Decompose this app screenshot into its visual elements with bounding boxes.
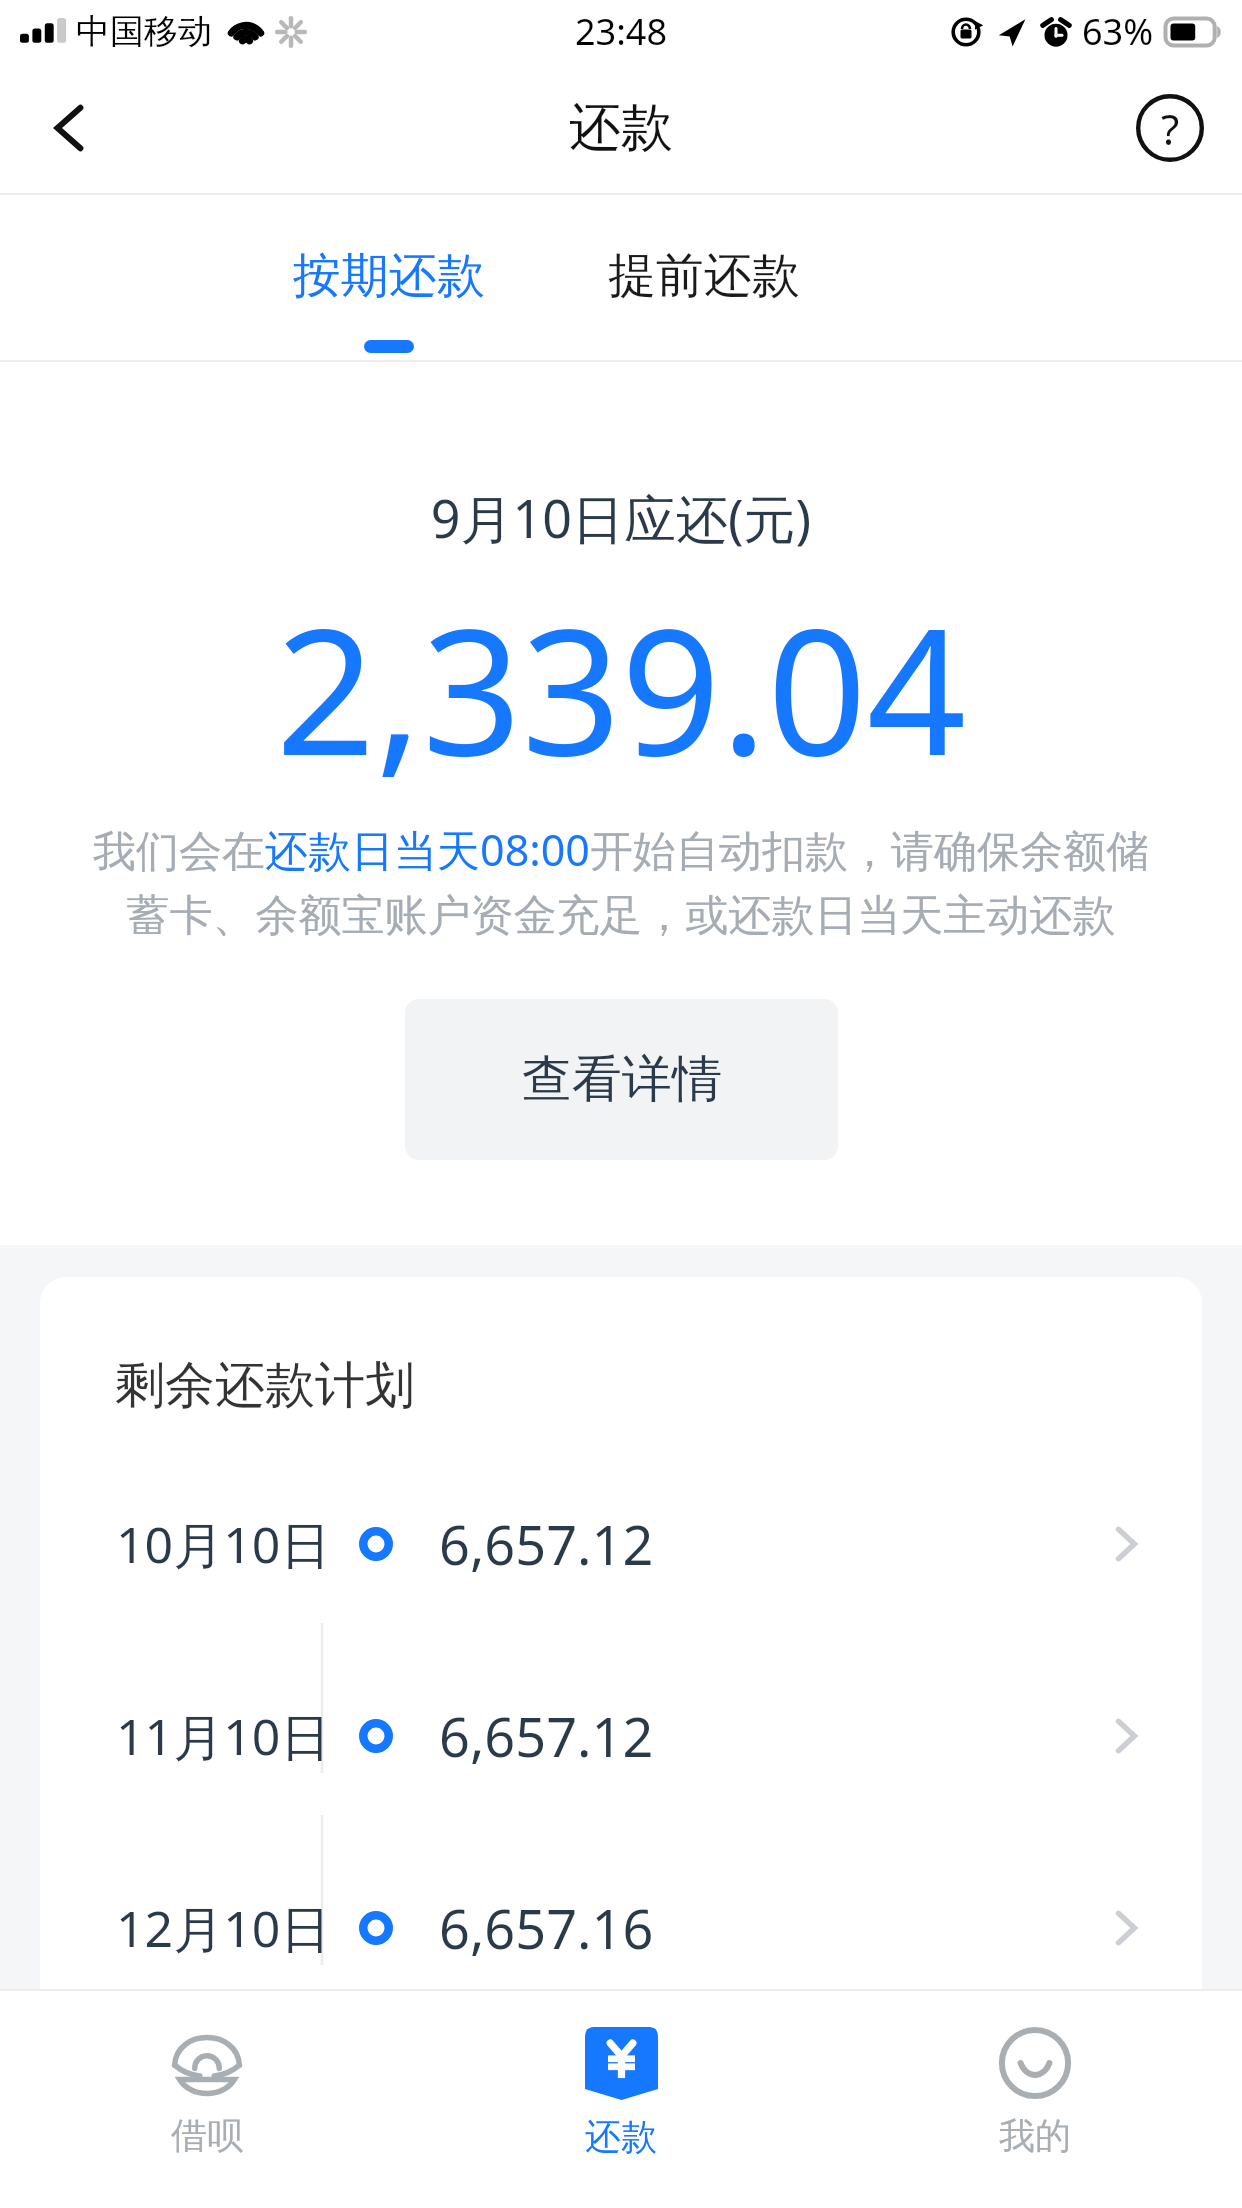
button[interactable]: 12月10日 bbox=[40, 1891, 1202, 2037]
staticText: 查看详情 bbox=[522, 1048, 722, 1111]
staticText: 6,657.12 bbox=[439, 1699, 654, 1773]
staticText: 还款 bbox=[585, 2114, 657, 2159]
staticText: ? bbox=[1161, 100, 1180, 157]
staticText: 12月10日 bbox=[116, 1894, 331, 1962]
staticText: 我们会在还款日当天08:00开始自动扣款，请确保余额储蓄卡、余额宝账户资金充足，… bbox=[82, 820, 1160, 943]
button[interactable]: 按期还款 bbox=[231, 195, 546, 360]
button[interactable]: 11月10日 bbox=[40, 1699, 1202, 1891]
staticText: 提前还款 bbox=[608, 246, 800, 306]
staticText: 23:48 bbox=[575, 7, 668, 56]
staticText: 借呗 bbox=[171, 2113, 243, 2158]
staticText: 2,339.04 bbox=[0, 569, 1242, 806]
staticText: 9月10日应还(元) bbox=[0, 482, 1242, 553]
staticText: 11月10日 bbox=[116, 1702, 331, 1770]
button[interactable]: 我的 bbox=[828, 1991, 1242, 2158]
button[interactable]: Help bbox=[1128, 86, 1212, 170]
button[interactable]: 10月10日 bbox=[40, 1507, 1202, 1699]
staticText: 我的 bbox=[999, 2113, 1071, 2158]
button[interactable]: 查看详情 bbox=[405, 999, 838, 1160]
button[interactable]: 提前还款 bbox=[546, 195, 861, 360]
button[interactable]: Back bbox=[28, 86, 112, 170]
staticText: 按期还款 bbox=[293, 246, 485, 306]
button[interactable]: 借呗 bbox=[0, 1991, 414, 2158]
staticText: 6,657.16 bbox=[439, 1891, 654, 1965]
staticText: 63% bbox=[1082, 7, 1154, 56]
staticText: 10月10日 bbox=[116, 1510, 331, 1578]
staticText: 剩余还款计划 bbox=[115, 1354, 415, 1417]
staticText: 中国移动 bbox=[76, 10, 212, 53]
button[interactable]: 还款 bbox=[414, 1991, 828, 2159]
staticText: 6,657.12 bbox=[439, 1507, 654, 1581]
staticText: 还款 bbox=[569, 95, 673, 161]
